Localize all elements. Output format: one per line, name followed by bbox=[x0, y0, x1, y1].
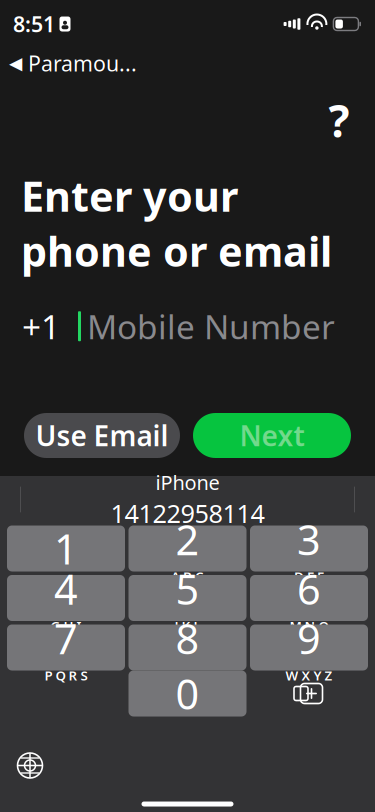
button[interactable]: Help bbox=[317, 98, 361, 142]
staticText: 8 bbox=[175, 611, 199, 666]
button[interactable]: 3 bbox=[250, 525, 368, 571]
staticText: Mobile Number bbox=[87, 304, 335, 348]
staticText: 9 bbox=[297, 611, 321, 666]
staticText: G H I bbox=[50, 617, 81, 635]
staticText: 6 bbox=[297, 561, 321, 616]
staticText: Next bbox=[239, 417, 304, 454]
button[interactable]: 1 bbox=[7, 525, 125, 571]
button[interactable]: 8 bbox=[128, 624, 246, 670]
staticText: 2 bbox=[175, 512, 199, 567]
button[interactable]: 0 bbox=[128, 670, 246, 716]
button[interactable]: 7 bbox=[7, 624, 125, 670]
staticText: ◀ bbox=[9, 53, 22, 73]
button[interactable]: 6 bbox=[250, 575, 368, 621]
staticText: Paramou... bbox=[28, 49, 137, 77]
staticText: J K L bbox=[174, 617, 200, 635]
staticText: M N O bbox=[289, 617, 328, 635]
staticText: 0 bbox=[175, 666, 199, 721]
staticText: P Q R S bbox=[44, 667, 87, 684]
button[interactable]: 2 bbox=[128, 525, 246, 571]
staticText: +1 bbox=[22, 304, 60, 348]
staticText: 7 bbox=[54, 611, 78, 666]
button[interactable]: Next keyboard bbox=[6, 743, 54, 787]
button[interactable]: 4 bbox=[7, 575, 125, 621]
staticText: A B C bbox=[171, 568, 204, 585]
staticText: Use Email bbox=[35, 417, 168, 454]
staticText: 8:51 bbox=[13, 10, 55, 38]
staticText: iPhone bbox=[155, 469, 219, 495]
button[interactable]: Delete bbox=[250, 670, 365, 716]
button[interactable]: ◀ bbox=[0, 46, 147, 80]
button[interactable]: Use Email bbox=[24, 413, 180, 458]
staticText: ? bbox=[328, 91, 349, 149]
staticText: Enter your phone or email bbox=[21, 168, 332, 278]
staticText: 5 bbox=[175, 561, 199, 616]
staticText: 1 bbox=[54, 521, 78, 576]
staticText: T U V bbox=[171, 667, 203, 684]
button[interactable]: 9 bbox=[250, 624, 368, 670]
staticText: 3 bbox=[297, 512, 321, 567]
staticText: 4 bbox=[54, 561, 78, 616]
staticText: 14122958114 bbox=[110, 496, 264, 530]
button[interactable]: 5 bbox=[128, 575, 246, 621]
staticText: W X Y Z bbox=[285, 667, 332, 684]
button[interactable]: Next bbox=[193, 413, 351, 458]
staticText: D E F bbox=[294, 568, 324, 585]
button[interactable]: iPhone bbox=[77, 475, 297, 523]
